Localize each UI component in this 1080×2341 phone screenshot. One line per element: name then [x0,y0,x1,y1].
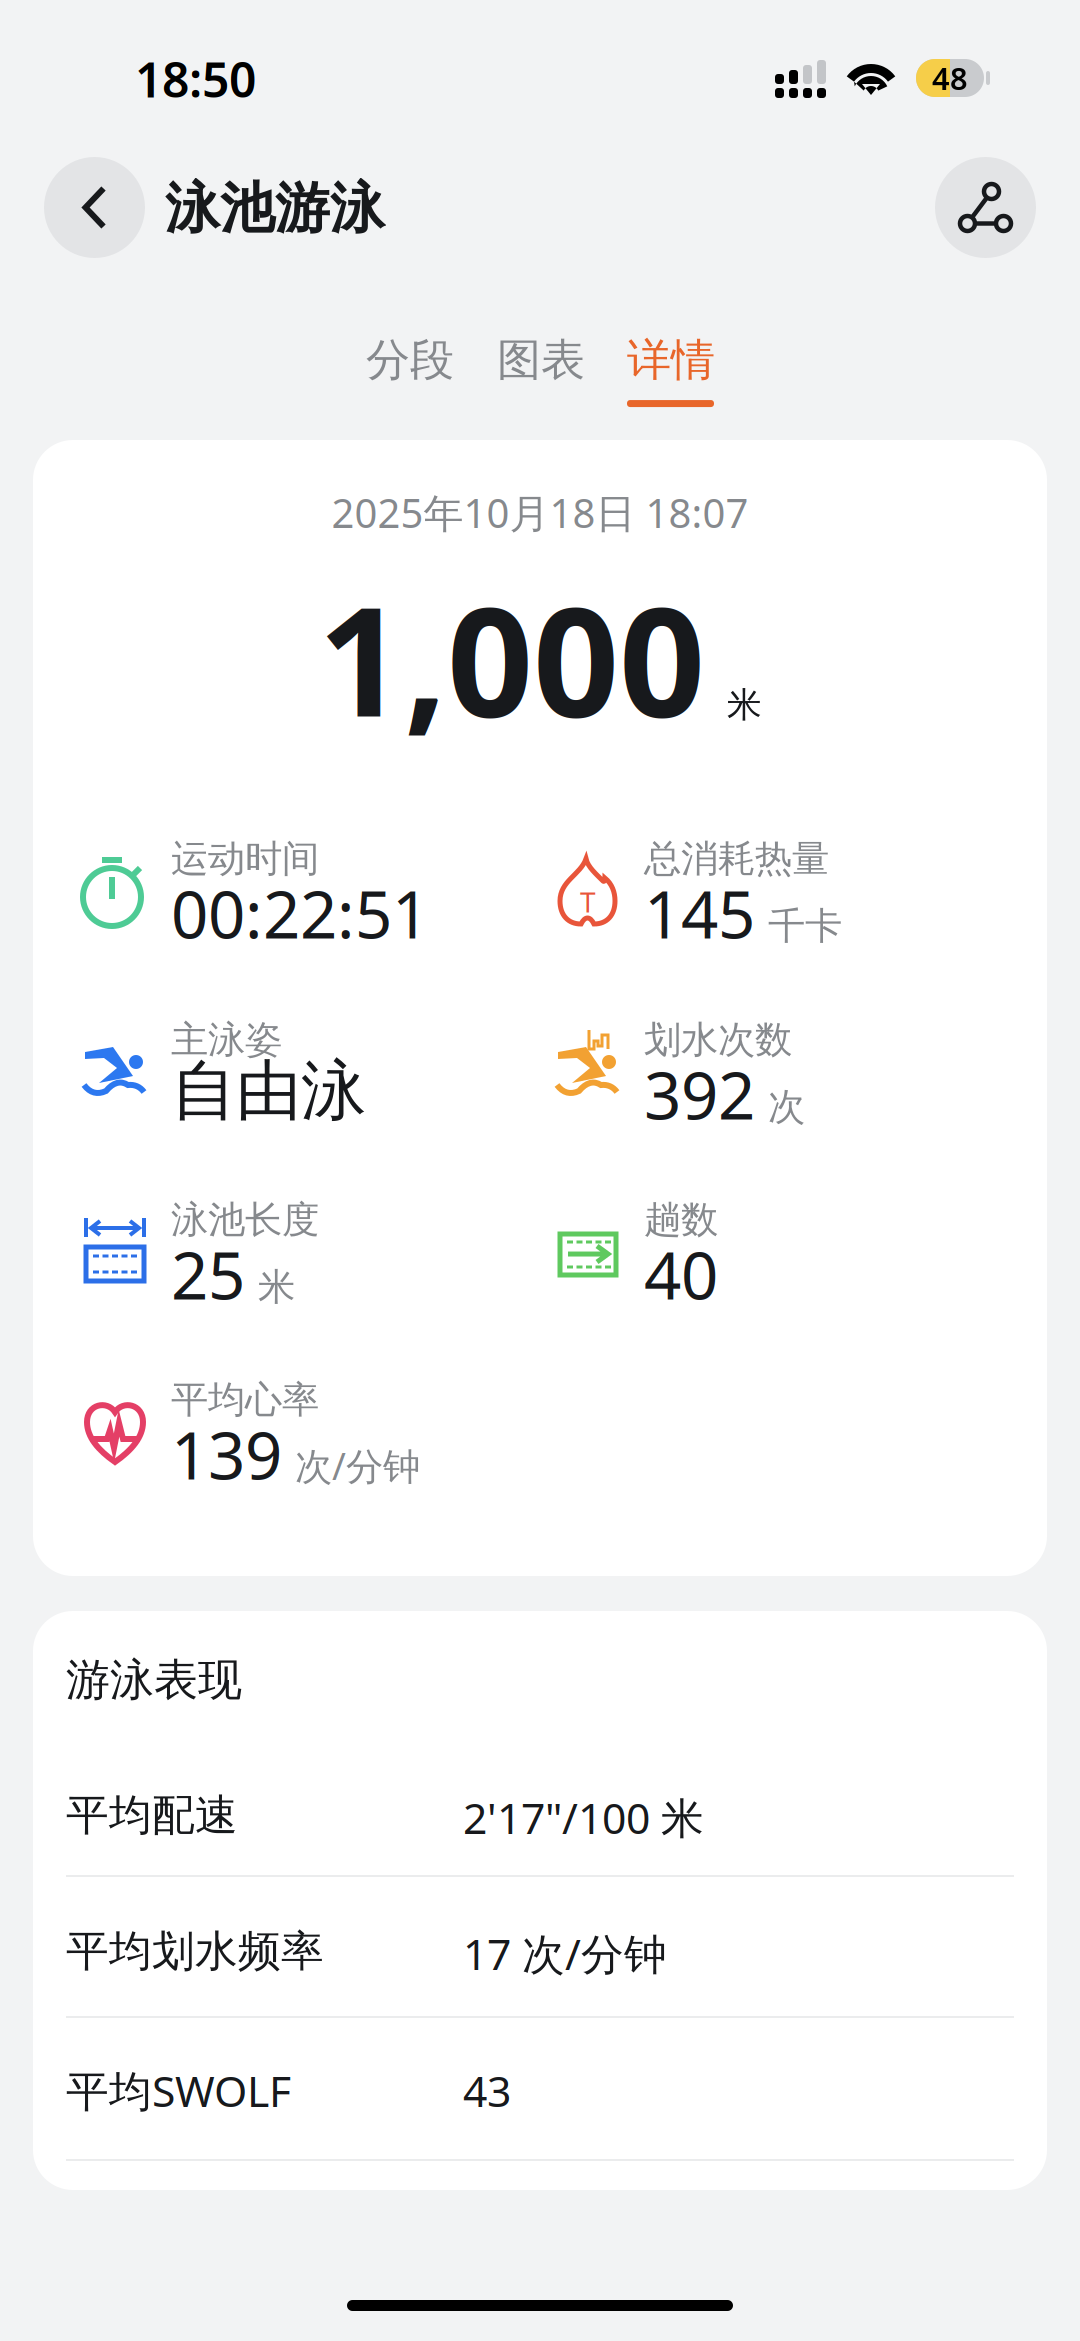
button[interactable]: 详情 [617,323,725,417]
staticText: 趟数 [644,1197,718,1243]
staticText: 图表 [497,333,585,387]
staticText: 运动时间 [171,836,319,882]
staticText: 次 [768,1084,805,1130]
staticText: 主泳姿 [171,1017,282,1063]
staticText: 2025年10月18日 18:07 [331,486,748,539]
staticText: 划水次数 [644,1017,792,1063]
staticText: 18:50 [135,47,256,111]
staticText: 分段 [366,333,454,387]
staticText: 40 [644,1231,718,1318]
staticText: 2'17"/100 米 [463,1789,704,1846]
staticText: 1,000 [318,558,705,758]
staticText: 48 [932,58,968,98]
staticText: 平均配速 [66,1789,238,1841]
staticText: 总消耗热量 [644,836,829,882]
staticText: 泳池长度 [171,1197,319,1243]
button[interactable]: 分段 [356,323,464,397]
staticText: 43 [463,2062,511,2119]
staticText: T [580,883,596,920]
staticText: 米 [258,1264,295,1310]
staticText: 次/分钟 [295,1441,420,1490]
staticText: 392 [644,1051,755,1138]
staticText: 详情 [627,333,715,387]
staticText: 139 [171,1411,282,1498]
staticText: 平均心率 [171,1377,319,1423]
staticText: 自由泳 [171,1051,366,1131]
staticText: 25 [171,1231,245,1318]
staticText: 17 次/分钟 [463,1925,667,1982]
staticText: 平均划水频率 [66,1925,324,1977]
staticText: 145 [644,870,755,957]
button[interactable]: 图表 [487,323,595,397]
staticText: 平均SWOLF [66,2062,291,2119]
button[interactable]: 分享 [935,157,1036,258]
staticText: 千卡 [768,903,842,949]
button[interactable]: 返回 [44,157,145,258]
staticText: 泳池游泳 [165,175,385,242]
staticText: 米 [727,684,762,726]
staticText: 00:22:51 [171,870,429,957]
staticText: 游泳表现 [66,1653,242,1707]
